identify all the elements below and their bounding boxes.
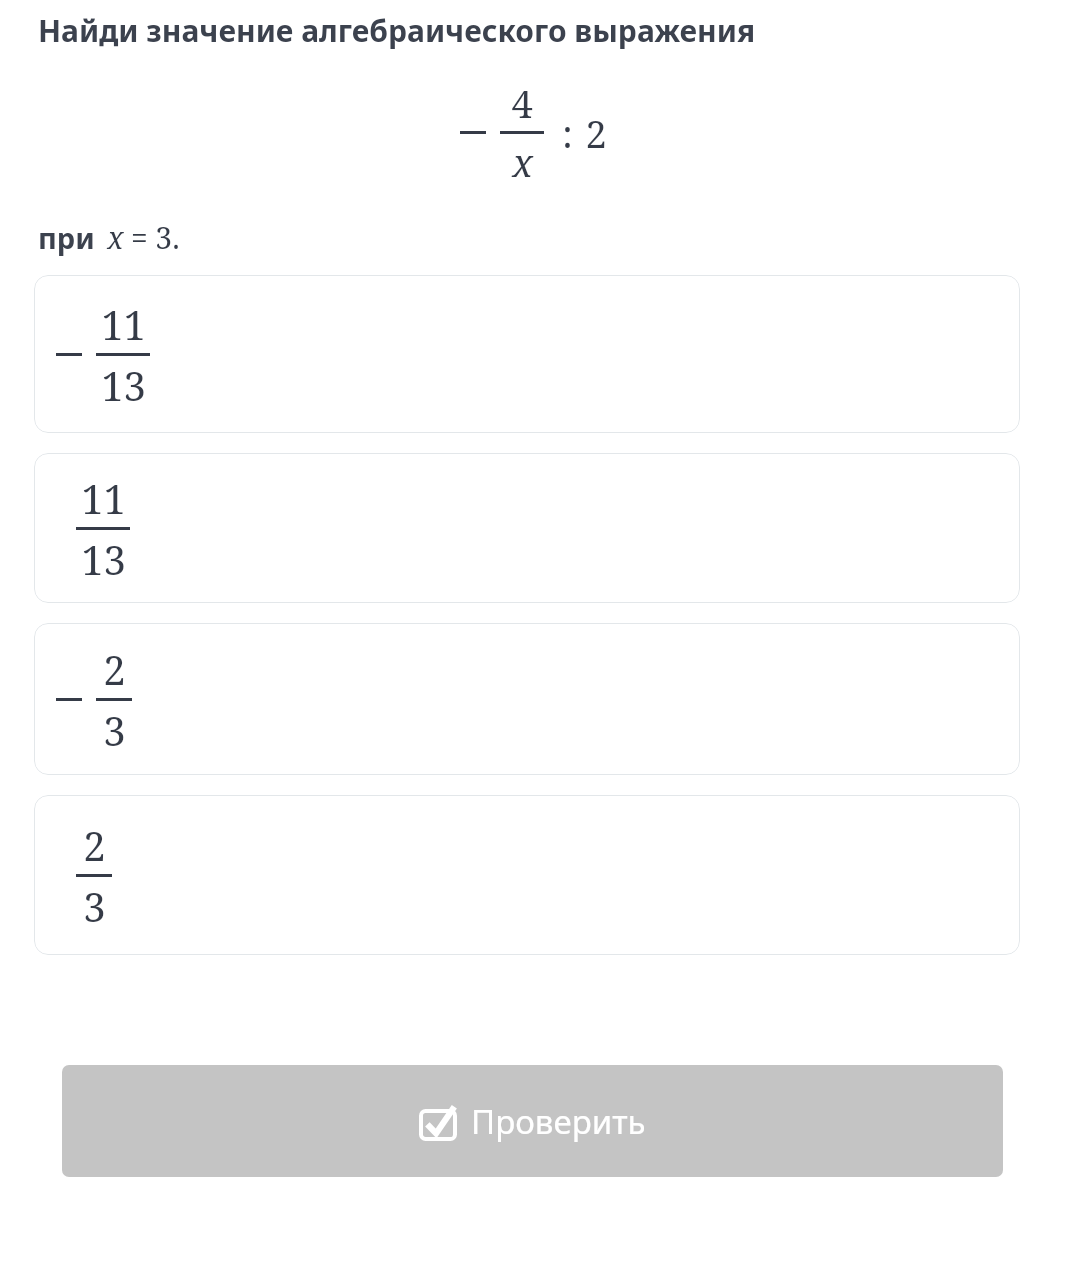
staticText: 3 [83,879,106,933]
staticText: : [562,107,573,159]
staticText: x [107,217,124,258]
button[interactable]: 11 [34,275,1020,433]
staticText: 3 [103,703,126,757]
staticText: = [131,217,148,258]
staticText: 2 [83,818,106,872]
button[interactable]: 2 [34,795,1020,955]
staticText: 11 [101,297,146,351]
button[interactable]: 11 [34,453,1020,603]
staticText: при [38,218,95,257]
staticText: 13 [81,532,126,586]
staticText: 2 [103,642,126,696]
staticText: 4 [511,77,533,129]
staticText: 11 [81,471,126,525]
button[interactable]: 2 [34,623,1020,775]
staticText: 13 [101,358,146,412]
button[interactable]: Проверить [62,1065,1003,1177]
staticText: Найди значение алгебраического выражения [38,10,837,51]
staticText: 2 [585,107,607,159]
staticText: x [512,136,533,188]
staticText: 3. [155,217,180,258]
staticText: Проверить [471,1099,646,1144]
